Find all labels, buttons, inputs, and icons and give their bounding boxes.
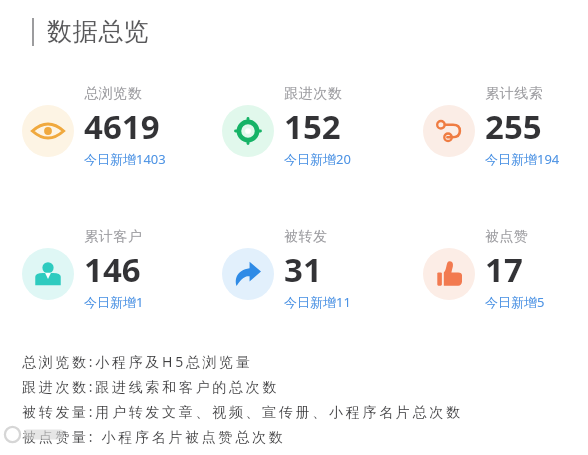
staticText: 总浏览数:小程序及H5总浏览量: [22, 352, 253, 371]
staticText: 今日新增1403: [84, 150, 166, 168]
staticText: 被点赞: [485, 228, 529, 246]
staticText: 255: [485, 104, 542, 149]
staticText: 17: [485, 247, 523, 292]
button[interactable]: Leads: [423, 85, 588, 168]
other: Follow ups: [222, 105, 274, 157]
staticText: 被点赞量: 小程序名片被点赞总次数: [22, 427, 286, 446]
staticText: 31: [284, 247, 322, 292]
staticText: 被转发量:用户转发文章、视频、宣传册、小程序名片总次数: [22, 402, 463, 421]
staticText: 152: [284, 104, 341, 149]
staticText: 累计线索: [485, 85, 543, 103]
button[interactable]: Likes: [423, 228, 588, 311]
staticText: 跟进次数:跟进线索和客户的总次数: [22, 377, 279, 396]
staticText: 被转发: [284, 228, 328, 246]
staticText: 数据总览: [47, 16, 150, 47]
staticText: 146: [84, 247, 141, 292]
staticText: 今日新增5: [485, 293, 545, 311]
staticText: 总浏览数: [84, 85, 142, 103]
other: Likes: [423, 248, 475, 300]
staticText: 累计客户: [84, 228, 142, 246]
staticText: 今日新增11: [284, 293, 351, 311]
button[interactable]: Customers: [22, 228, 192, 311]
other: Customers: [22, 248, 74, 300]
staticText: 今日新增20: [284, 150, 351, 168]
staticText: 跟进次数: [284, 85, 342, 103]
button[interactable]: Shares: [222, 228, 392, 311]
other: Leads: [423, 105, 475, 157]
button[interactable]: Total views: [22, 85, 192, 168]
other: Shares: [222, 248, 274, 300]
staticText: 今日新增1: [84, 293, 144, 311]
staticText: 今日新增194: [485, 150, 560, 168]
staticText: 4619: [84, 104, 160, 149]
button[interactable]: Follow ups: [222, 85, 392, 168]
other: Total views: [22, 105, 74, 157]
